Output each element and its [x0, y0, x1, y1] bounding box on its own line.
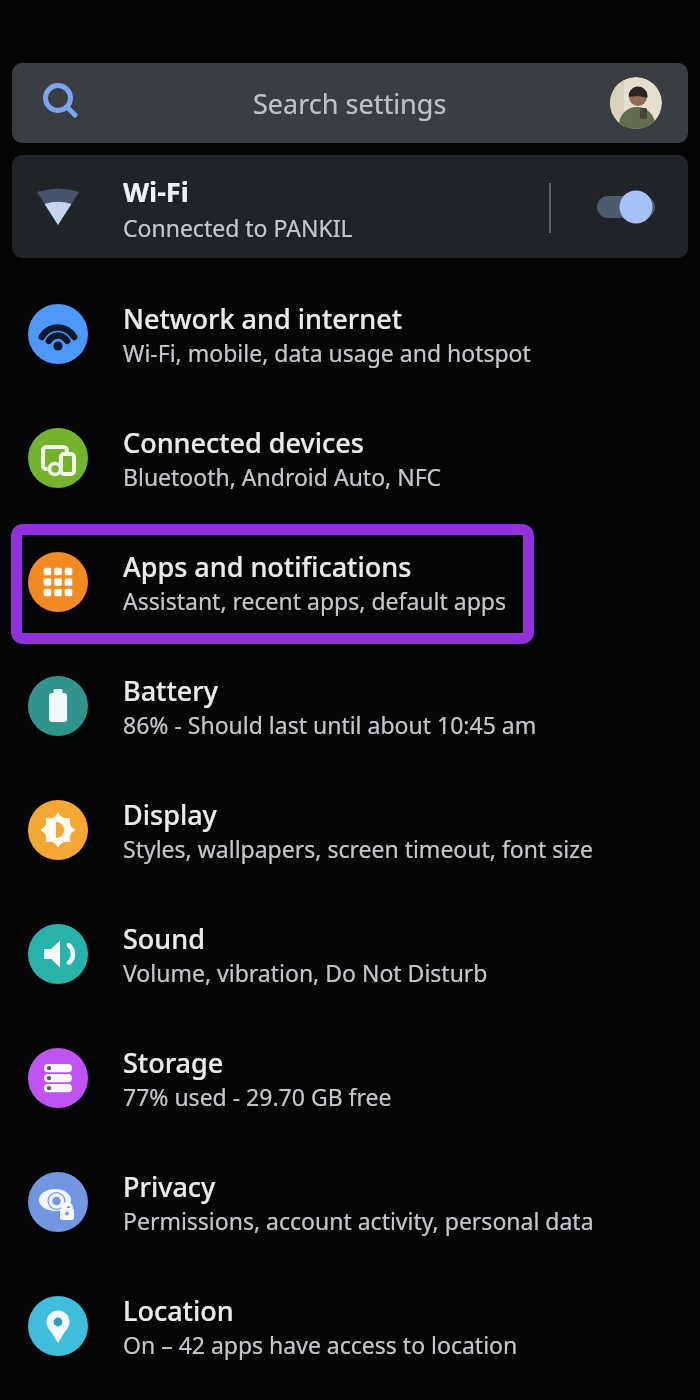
staticText: Privacy	[123, 1168, 216, 1205]
staticText: Connected to PANKIL	[123, 212, 353, 243]
staticText: Display	[123, 796, 217, 833]
button[interactable]: Privacy	[0, 1140, 700, 1264]
staticText: Apps and notifications	[123, 548, 412, 585]
button[interactable]: Display	[0, 768, 700, 892]
staticText: Wi-Fi, mobile, data usage and hotspot	[123, 337, 531, 368]
staticText: Location	[123, 1292, 234, 1329]
staticText: Sound	[123, 920, 205, 957]
staticText: Styles, wallpapers, screen timeout, font…	[123, 833, 593, 864]
staticText: Battery	[123, 672, 218, 709]
staticText: Wi-Fi	[123, 173, 189, 210]
staticText: Search settings	[253, 85, 447, 122]
button[interactable]	[610, 77, 662, 129]
staticText: On – 42 apps have access to location	[123, 1329, 518, 1360]
staticText: 77% used - 29.70 GB free	[123, 1081, 392, 1112]
staticText: Permissions, account activity, personal …	[123, 1205, 594, 1236]
staticText: Assistant, recent apps, default apps	[123, 585, 506, 616]
staticText: 86% - Should last until about 10:45 am	[123, 709, 537, 740]
button[interactable]: Storage	[0, 1016, 700, 1140]
button[interactable]: Location	[0, 1264, 700, 1388]
button[interactable]: Network and internet	[0, 272, 700, 396]
staticText: Network and internet	[123, 300, 402, 337]
staticText: Connected devices	[123, 424, 364, 461]
button[interactable]: Battery	[0, 644, 700, 768]
button[interactable]: Search settings	[12, 63, 688, 143]
button[interactable]: Sound	[0, 892, 700, 1016]
button[interactable]: Apps and notifications	[0, 520, 700, 644]
button[interactable]: Connected devices	[0, 396, 700, 520]
staticText: Bluetooth, Android Auto, NFC	[123, 461, 442, 492]
staticText: Storage	[123, 1044, 224, 1081]
button[interactable]: Wi-Fi	[12, 155, 688, 258]
staticText: Volume, vibration, Do Not Disturb	[123, 957, 488, 988]
